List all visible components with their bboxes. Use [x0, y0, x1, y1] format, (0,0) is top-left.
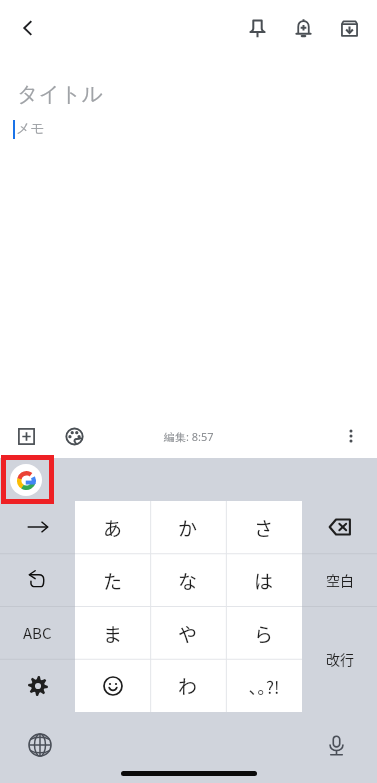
button[interactable]: あ — [75, 501, 150, 554]
staticText: タイトル — [17, 81, 103, 107]
staticText: さ — [254, 514, 274, 542]
staticText: ら — [254, 620, 274, 648]
button[interactable]: わ — [150, 660, 226, 712]
staticText: あ — [103, 514, 123, 542]
button[interactable]: Undo — [0, 553, 75, 606]
staticText: 改行 — [326, 649, 354, 669]
button[interactable]: Pin — [234, 5, 280, 51]
button[interactable]: Google — [10, 464, 42, 496]
button[interactable]: Color palette — [56, 418, 92, 454]
button[interactable]: Next — [0, 501, 75, 553]
button[interactable]: な — [150, 554, 226, 607]
button[interactable]: か — [150, 501, 226, 554]
button[interactable]: Backspace — [302, 501, 377, 553]
staticText: た — [103, 567, 123, 595]
button[interactable]: Settings — [0, 659, 75, 712]
button[interactable]: Voice input — [316, 725, 356, 765]
staticText: ､｡?! — [249, 674, 280, 699]
button[interactable]: Reminder — [280, 5, 326, 51]
button[interactable]: Archive — [326, 5, 372, 51]
staticText: ABC — [23, 622, 52, 644]
button[interactable]: さ — [226, 501, 302, 554]
button[interactable]: 空白 — [302, 553, 377, 606]
staticText: メモ — [16, 120, 45, 138]
button[interactable]: た — [75, 554, 150, 607]
staticText: わ — [178, 672, 198, 700]
button[interactable]: ､｡?! — [226, 660, 302, 712]
button[interactable]: ら — [226, 607, 302, 660]
button[interactable]: Add — [8, 418, 44, 454]
button[interactable]: や — [150, 607, 226, 660]
staticText: か — [178, 514, 198, 542]
staticText: 編集: 8:57 — [164, 429, 214, 444]
button[interactable]: Back — [6, 6, 50, 50]
staticText: は — [254, 567, 274, 595]
staticText: な — [178, 567, 198, 595]
button[interactable]: Emoji — [75, 660, 150, 712]
button[interactable]: 改行 — [302, 606, 377, 712]
button[interactable]: Change language — [20, 725, 60, 765]
button[interactable]: ABC — [0, 606, 75, 659]
button[interactable]: ま — [75, 607, 150, 660]
button[interactable]: More options — [333, 418, 369, 454]
staticText: 空白 — [326, 570, 354, 590]
staticText: ま — [103, 620, 123, 648]
button[interactable]: は — [226, 554, 302, 607]
staticText: や — [178, 620, 198, 648]
